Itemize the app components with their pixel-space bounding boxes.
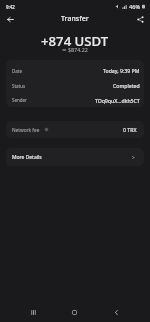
button[interactable]: Home (68, 306, 81, 319)
staticText: 0 TRX (123, 126, 137, 133)
button[interactable]: Network fee (6, 121, 144, 138)
button[interactable]: Back (4, 13, 17, 25)
staticText: Status (12, 83, 26, 89)
staticText: 46% (129, 3, 141, 11)
button[interactable]: Recent apps (27, 306, 40, 319)
staticText: Sender (12, 97, 27, 103)
staticText: +874 USDT (41, 32, 109, 50)
staticText: More Details (12, 154, 42, 161)
button[interactable]: Share (134, 13, 147, 25)
staticText: Transfer (61, 14, 89, 24)
staticText: TDq9quX...dkh5CT (95, 97, 140, 104)
staticText: 9:42 (6, 4, 15, 10)
button[interactable]: Back (110, 306, 123, 319)
staticText: ≈ $874.22 (62, 46, 88, 53)
button[interactable]: More Details (6, 148, 144, 166)
staticText: Network fee (12, 127, 40, 133)
staticText: Date (12, 68, 22, 74)
staticText: Completed (113, 82, 140, 89)
staticText: Today, 9:39 PM (103, 67, 140, 74)
